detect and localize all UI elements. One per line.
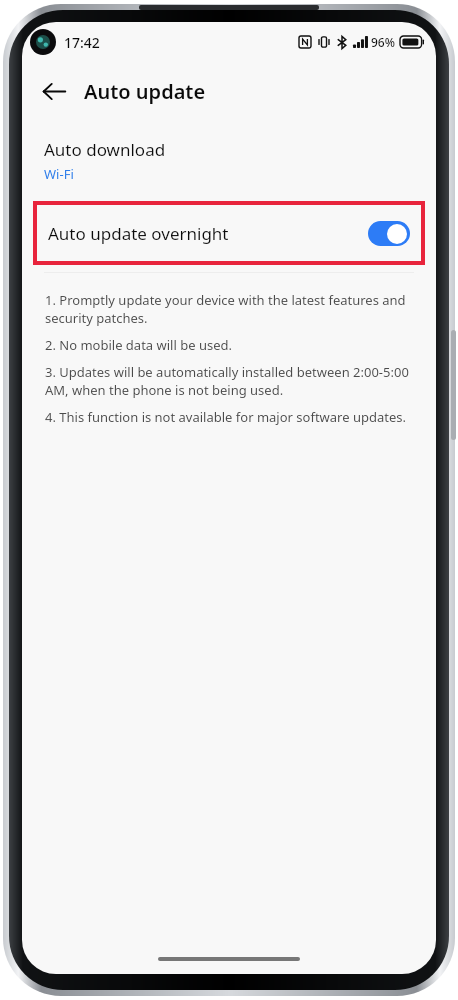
staticText: 17:42 <box>64 33 100 52</box>
staticText: 4. This function is not available for ma… <box>45 408 406 426</box>
staticText: Auto update overnight <box>48 222 229 245</box>
staticText: 96% <box>371 34 395 50</box>
button[interactable]: Back <box>32 69 76 113</box>
button[interactable]: Auto update overnight toggle, on <box>368 221 410 246</box>
staticText: 2. No mobile data will be used. <box>45 336 232 354</box>
staticText: 3. Updates will be automatically install… <box>45 363 413 399</box>
staticText: Auto download <box>44 138 166 161</box>
staticText: Auto update <box>84 78 206 105</box>
staticText: 1. Promptly update your device with the … <box>45 291 413 327</box>
button[interactable]: Auto update overnight <box>37 205 421 261</box>
button[interactable]: Auto download <box>22 134 436 189</box>
staticText: Wi-Fi <box>44 165 74 183</box>
